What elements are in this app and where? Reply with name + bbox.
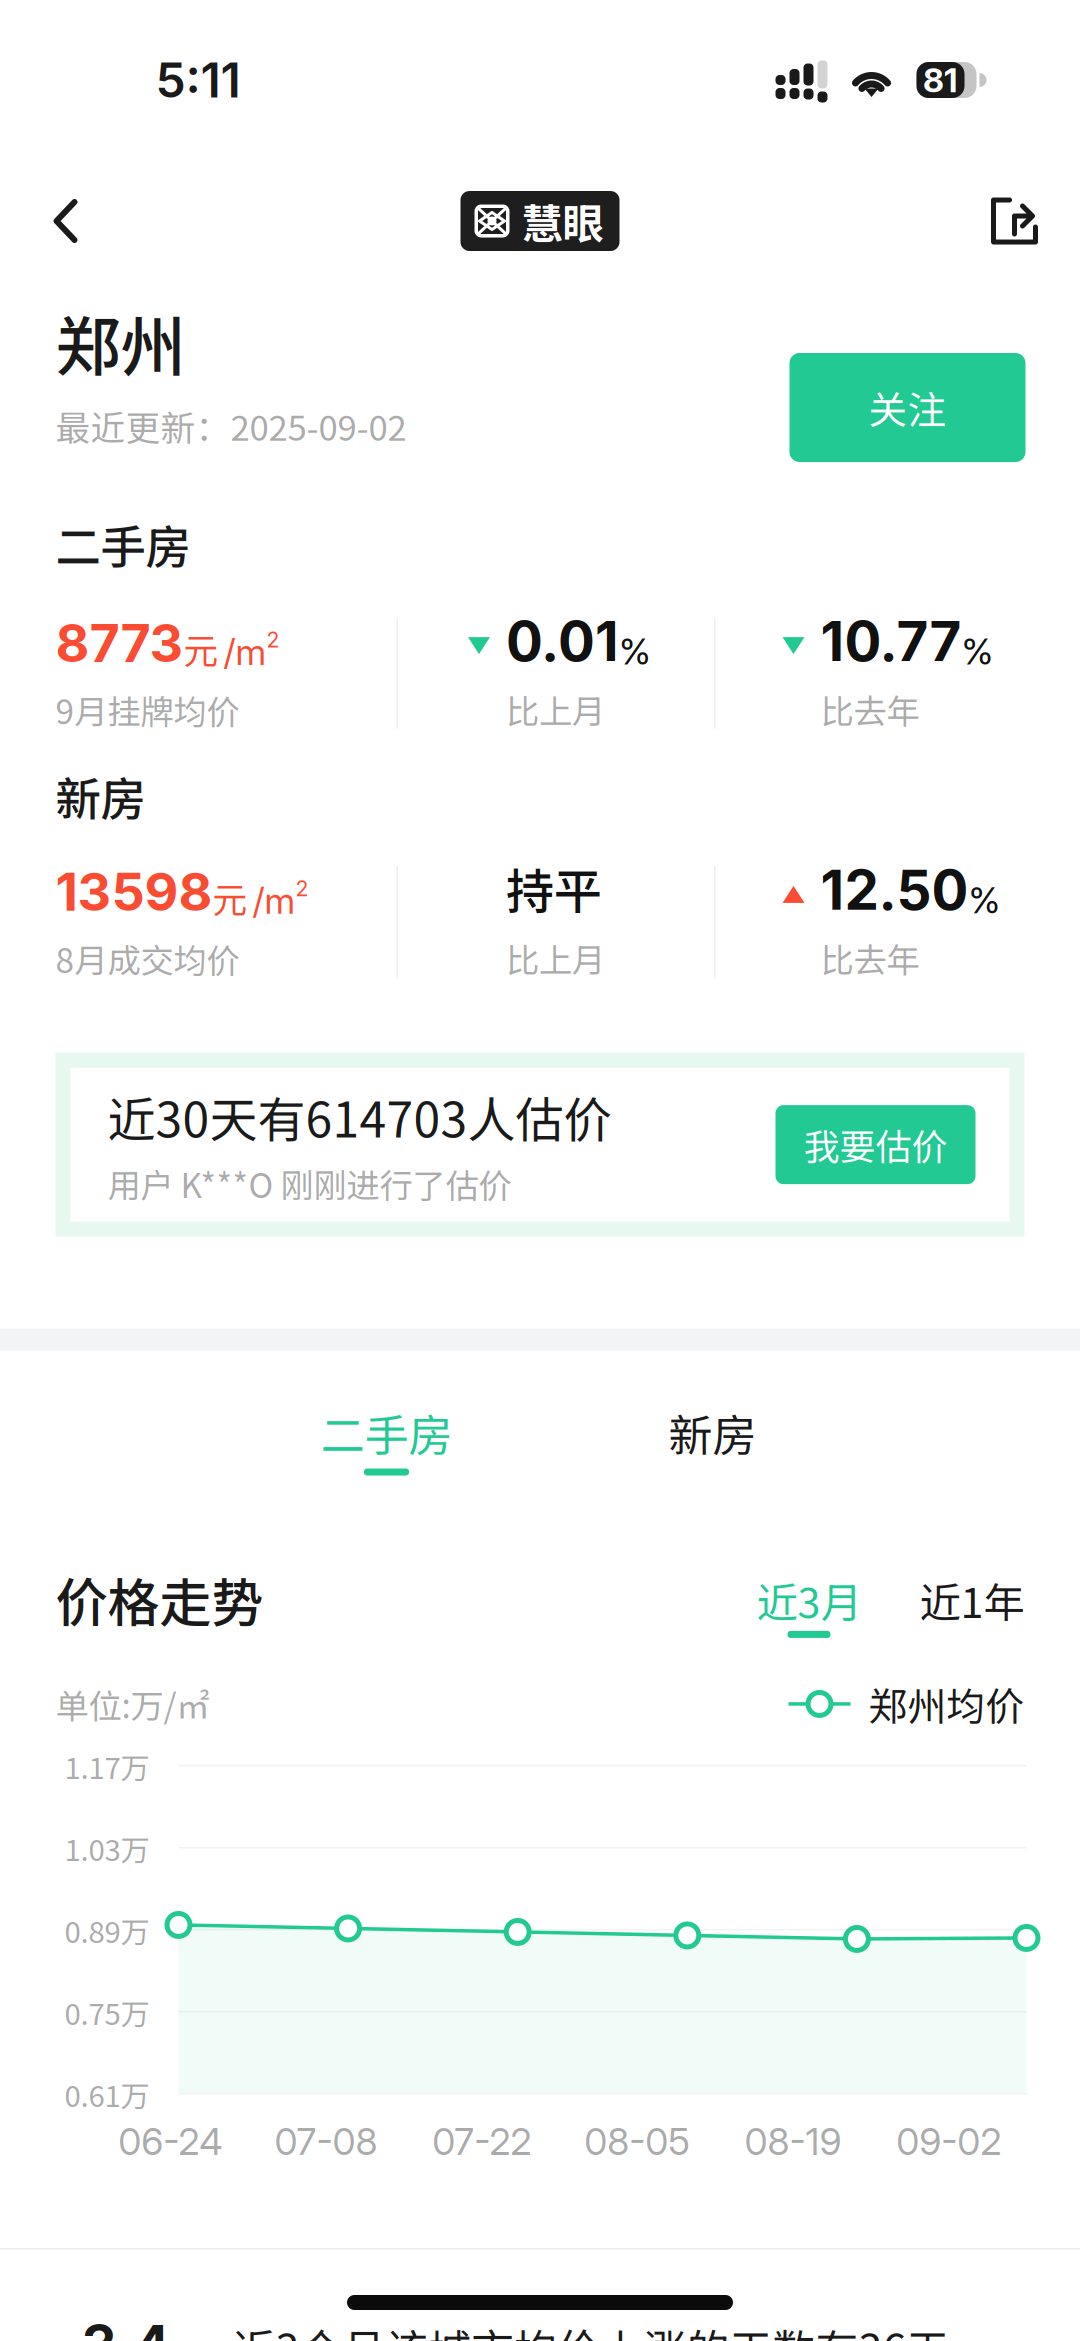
staticText: 9月挂牌均价 [55,686,239,734]
staticText: 0.01 [506,608,619,674]
staticText: 81 [923,60,958,100]
staticText: 郑州均价 [868,1676,1024,1732]
staticText: 近1年 [919,1570,1024,1630]
staticText: 近30天有614703人估价 [107,1082,611,1151]
staticText: 单位:万/㎡ [55,1680,209,1728]
staticText: 价格走势 [55,1562,263,1637]
staticText: 2 [266,627,279,652]
button[interactable]: 近1年 [919,1570,1024,1637]
staticText: 近3个月该城市均价上涨的天数有36天 [232,2316,949,2341]
staticText: 13598 [55,860,212,923]
staticText: 3.4 [81,2312,170,2341]
staticText: % [968,878,1000,922]
staticText: 07-08 [274,2119,377,2164]
staticText: 8月成交均价 [55,934,239,983]
button[interactable]: 近3月 [756,1570,861,1637]
staticText: 用户 K***O 刚刚进行了估价 [107,1159,511,1208]
staticText: /m [223,630,266,674]
staticText: 8773 [55,612,183,674]
staticText: 新房 [668,1401,756,1464]
button[interactable]: 关注 [789,353,1025,462]
button[interactable]: 二手房 [261,1400,511,1477]
staticText: 元 [183,623,218,674]
staticText: 0.61万 [64,2073,149,2115]
staticText: 06-24 [118,2119,222,2164]
button[interactable]: 新房 [612,1400,812,1477]
staticText: 元 [212,872,247,922]
staticText: 5:11 [155,51,240,109]
staticText: 08-19 [744,2119,841,2164]
staticText: 关注 [868,379,946,435]
staticText: 近3月 [756,1570,861,1630]
staticText: 郑州 [55,295,185,390]
staticText: 比上月 [506,934,605,982]
staticText: 比去年 [820,934,919,982]
button[interactable]: 近30天有614703人估价 [55,1053,1024,1237]
staticText: 持平 [506,853,602,923]
button[interactable]: Share [966,165,1062,277]
staticText: 1.17万 [64,1745,149,1787]
staticText: 12.50 [820,857,968,923]
staticText: 0.89万 [64,1909,149,1951]
staticText: 新房 [55,763,145,828]
staticText: /m [252,879,295,922]
staticText: % [619,629,651,673]
staticText: 二手房 [55,511,190,577]
staticText: 2 [295,876,308,901]
staticText: 比去年 [820,685,919,733]
staticText: 最近更新：2025-09-02 [55,401,406,451]
button[interactable]: Back [17,165,113,277]
staticText: 08-05 [584,2119,690,2164]
staticText: 07-22 [432,2119,531,2164]
staticText: 0.75万 [64,1991,149,2033]
staticText: 10.77 [820,608,961,674]
staticText: % [961,629,993,673]
staticText: 我要估价 [803,1119,947,1171]
staticText: 慧眼 [521,191,603,251]
staticText: 1.03万 [64,1827,149,1869]
staticText: 比上月 [506,685,605,733]
staticText: 09-02 [896,2119,1001,2164]
staticText: 二手房 [320,1401,452,1464]
